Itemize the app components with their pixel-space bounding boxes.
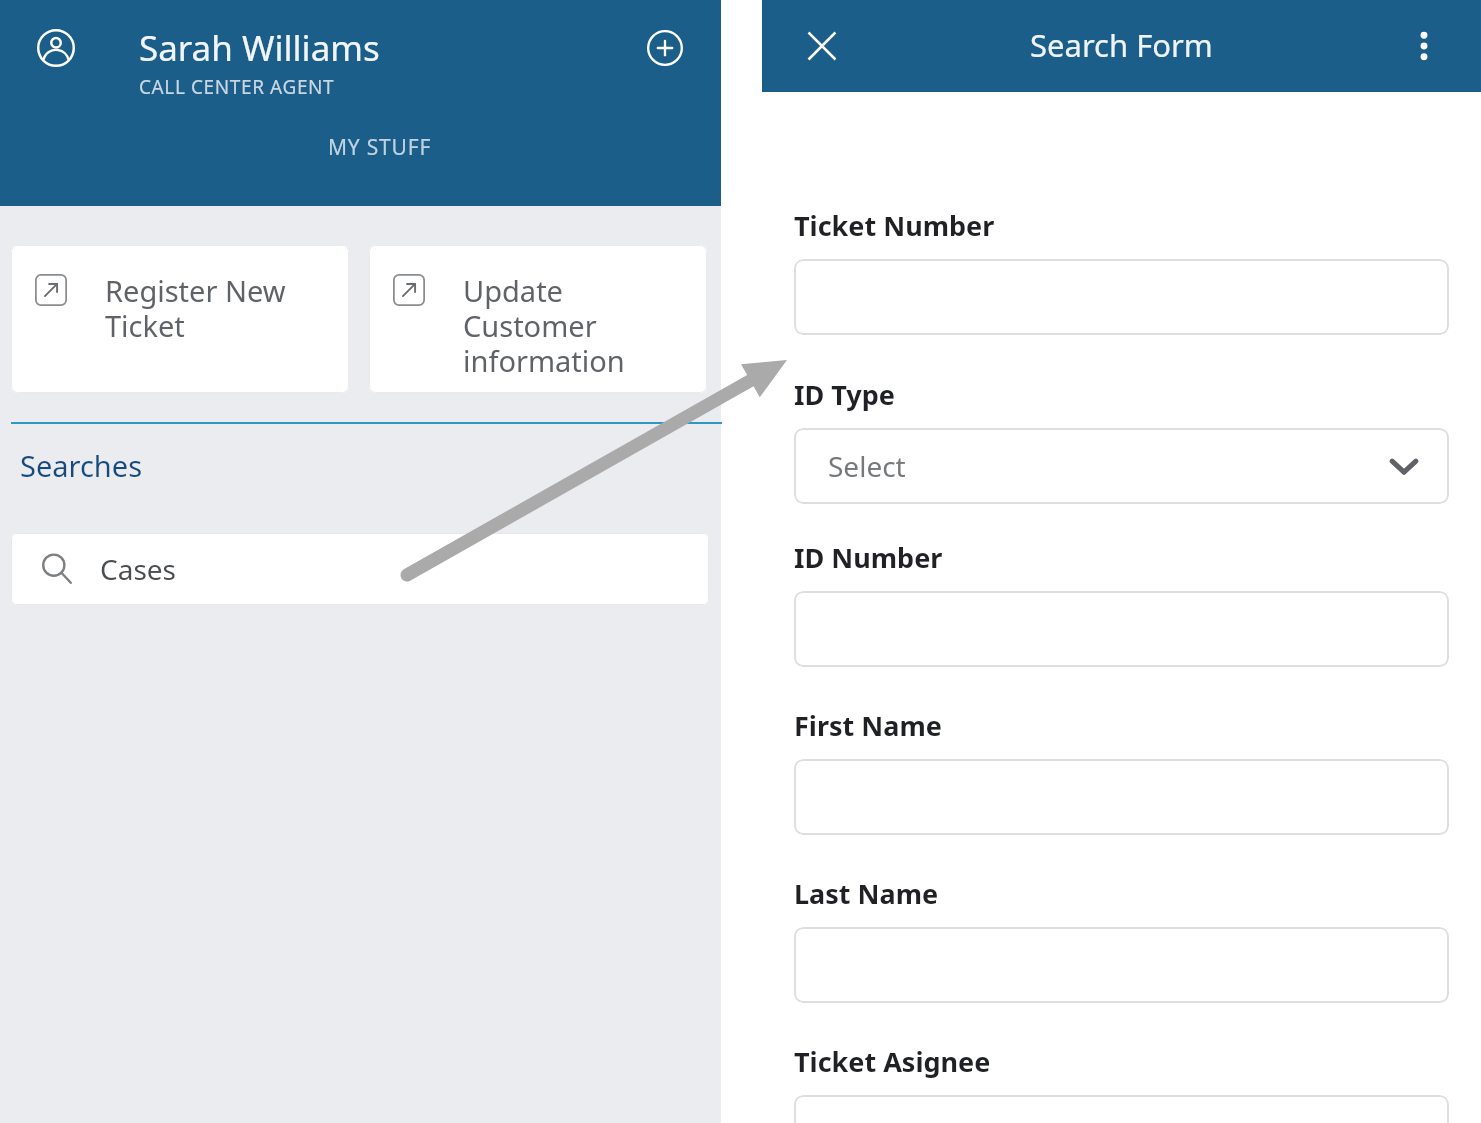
- staticText: Select: [828, 447, 906, 485]
- staticText: CALL CENTER AGENT: [139, 74, 335, 100]
- staticText: ID Number: [794, 539, 943, 576]
- staticText: Searches: [20, 446, 143, 485]
- staticText: Ticket Number: [794, 207, 995, 244]
- button[interactable]: [794, 259, 1449, 335]
- staticText: Sarah Williams: [139, 24, 380, 72]
- button[interactable]: MY STUFF: [38, 133, 721, 176]
- button[interactable]: Account: [28, 20, 84, 76]
- staticText: Ticket Asignee: [794, 1043, 991, 1080]
- button[interactable]: Register New Ticket: [11, 245, 349, 393]
- button[interactable]: Close: [796, 20, 848, 72]
- button[interactable]: Update Customer information: [369, 245, 707, 393]
- button[interactable]: [794, 759, 1449, 835]
- staticText: Update Customer information: [463, 271, 625, 381]
- button[interactable]: Add: [637, 20, 693, 76]
- button[interactable]: Cases: [11, 533, 709, 605]
- staticText: Register New Ticket: [105, 271, 286, 346]
- button[interactable]: Select: [794, 428, 1449, 504]
- staticText: Search Form: [1030, 24, 1213, 66]
- button[interactable]: More options: [1398, 20, 1450, 72]
- staticText: Last Name: [794, 875, 939, 912]
- button[interactable]: [794, 927, 1449, 1003]
- button[interactable]: Select: [794, 1095, 1449, 1123]
- staticText: MY STUFF: [328, 133, 432, 162]
- button[interactable]: [794, 591, 1449, 667]
- staticText: Cases: [100, 550, 177, 588]
- staticText: ID Type: [794, 376, 895, 413]
- staticText: First Name: [794, 707, 942, 744]
